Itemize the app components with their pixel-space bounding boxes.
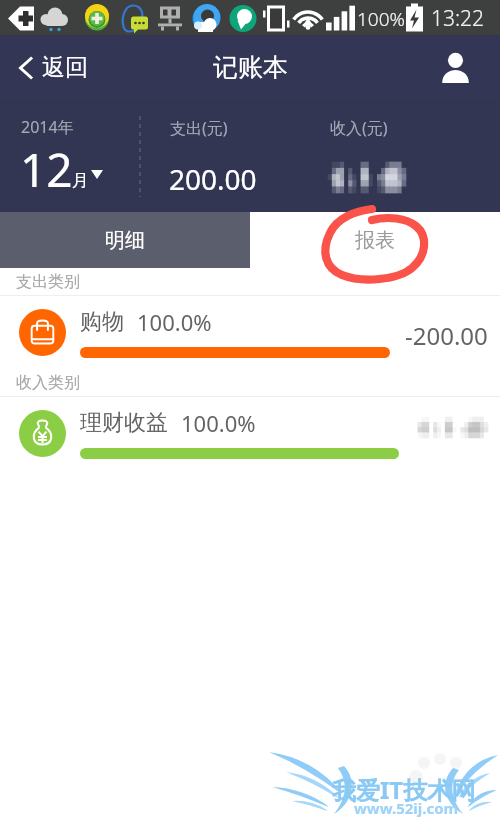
staticText: 12 — [20, 138, 73, 201]
staticText: 200.00 — [169, 160, 257, 198]
staticText: -200.00 — [405, 319, 488, 352]
staticText: 100.0% — [181, 408, 256, 438]
button[interactable]: 购物 — [0, 296, 500, 368]
staticText: 我爱IT技术网 — [332, 773, 476, 806]
staticText: 理财收益 — [80, 409, 168, 437]
button[interactable]: 明细 — [0, 212, 250, 268]
staticText: 13:22 — [431, 4, 485, 33]
staticText: 支出(元) — [170, 117, 228, 139]
staticText: 报表 — [355, 228, 395, 253]
staticText: 收入类别 — [16, 373, 80, 393]
staticText: 2014年 — [21, 116, 74, 138]
staticText: 支出类别 — [16, 272, 80, 292]
staticText: 明细 — [105, 228, 145, 253]
staticText: 记账本 — [213, 52, 288, 83]
button[interactable]: 返回 — [0, 35, 106, 100]
button[interactable]: 报表 — [250, 212, 500, 268]
staticText: 100.0% — [137, 307, 212, 337]
staticText: 收入(元) — [330, 117, 388, 139]
button[interactable]: 理财收益 — [0, 397, 500, 469]
staticText: 月 — [72, 170, 89, 191]
staticText: www.52ij.com — [354, 798, 459, 818]
staticText: 100% — [357, 6, 405, 32]
button[interactable]: Profile — [425, 35, 500, 100]
staticText: 购物 — [80, 308, 124, 336]
staticText: 返回 — [42, 53, 88, 82]
